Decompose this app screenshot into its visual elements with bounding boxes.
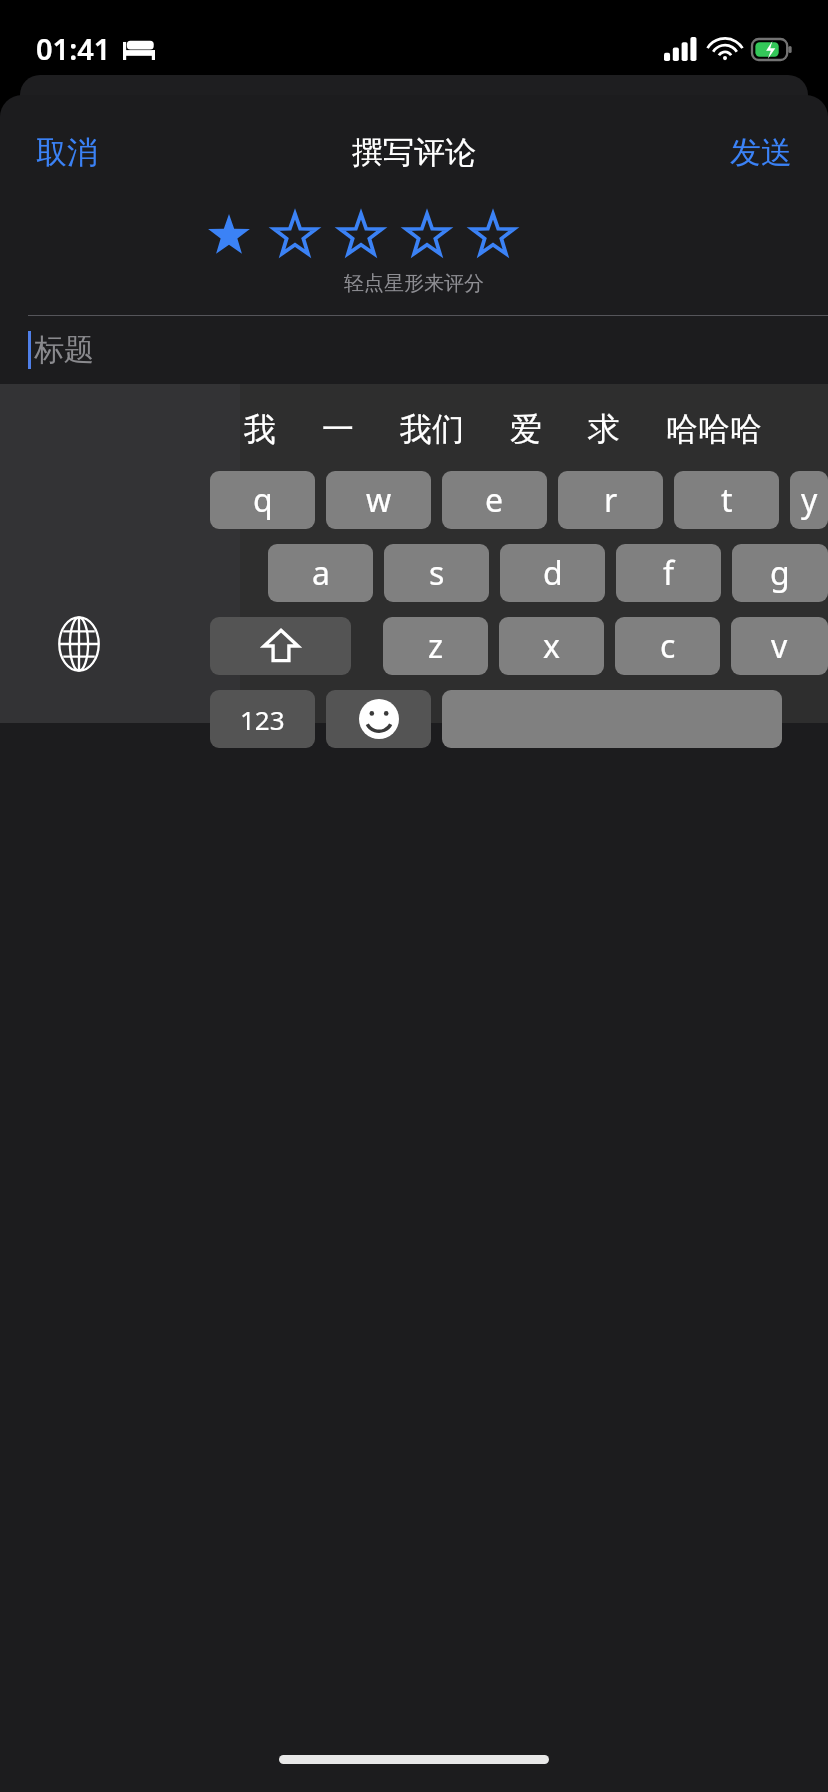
- button[interactable]: y: [790, 471, 828, 529]
- staticText: t: [721, 478, 733, 522]
- button[interactable]: 求: [566, 399, 642, 459]
- button[interactable]: 我们: [378, 399, 486, 459]
- button[interactable]: 我: [222, 399, 298, 459]
- button[interactable]: 123: [210, 690, 315, 748]
- staticText: s: [429, 551, 445, 595]
- button[interactable]: x: [499, 617, 604, 675]
- button[interactable]: c: [615, 617, 720, 675]
- staticText: w: [366, 478, 392, 522]
- staticText: 取消: [36, 133, 98, 172]
- staticText: e: [485, 478, 504, 522]
- button[interactable]: v: [731, 617, 828, 675]
- button[interactable]: d: [500, 544, 605, 602]
- button[interactable]: t: [674, 471, 779, 529]
- staticText: r: [604, 478, 618, 522]
- staticText: 一: [322, 409, 354, 449]
- button[interactable]: e: [442, 471, 547, 529]
- button[interactable]: a: [268, 544, 373, 602]
- button[interactable]: Rate 3 stars: [328, 205, 394, 265]
- button[interactable]: 哈哈哈: [644, 399, 784, 459]
- staticText: d: [543, 551, 563, 595]
- button[interactable]: g: [732, 544, 828, 602]
- staticText: v: [771, 624, 788, 668]
- button[interactable]: Rate 2 stars: [262, 205, 328, 265]
- button[interactable]: Switch keyboard language: [48, 613, 110, 675]
- staticText: 标题: [34, 331, 94, 369]
- staticText: 轻点星形来评分: [0, 271, 828, 296]
- staticText: c: [660, 624, 676, 668]
- button[interactable]: Rate 4 stars: [394, 205, 460, 265]
- staticText: f: [663, 551, 675, 595]
- button[interactable]: s: [384, 544, 489, 602]
- button[interactable]: 爱: [488, 399, 564, 459]
- button[interactable]: z: [383, 617, 488, 675]
- button[interactable]: 发送: [694, 119, 828, 186]
- staticText: g: [770, 551, 790, 595]
- staticText: 哈哈哈: [666, 409, 762, 449]
- staticText: y: [801, 478, 818, 522]
- button[interactable]: Rate 5 stars: [460, 205, 526, 265]
- staticText: 我: [244, 409, 276, 449]
- button[interactable]: 标题: [0, 316, 828, 384]
- button[interactable]: r: [558, 471, 663, 529]
- staticText: 爱: [510, 409, 542, 449]
- button[interactable]: q: [210, 471, 315, 529]
- button[interactable]: Space: [442, 690, 782, 748]
- button[interactable]: 取消: [0, 119, 134, 186]
- staticText: q: [253, 478, 273, 522]
- staticText: 求: [588, 409, 620, 449]
- button[interactable]: f: [616, 544, 721, 602]
- staticText: z: [428, 624, 444, 668]
- button[interactable]: w: [326, 471, 431, 529]
- staticText: 01:41: [36, 29, 111, 68]
- staticText: 我们: [400, 409, 464, 449]
- button[interactable]: Emoji: [326, 690, 431, 748]
- staticText: x: [543, 624, 560, 668]
- button[interactable]: 一: [300, 399, 376, 459]
- staticText: 123: [240, 702, 285, 737]
- staticText: 发送: [730, 133, 792, 172]
- button[interactable]: Rate 1 stars: [196, 205, 262, 265]
- staticText: a: [312, 551, 330, 595]
- button[interactable]: Shift: [210, 617, 351, 675]
- staticText: 撰写评论: [352, 133, 476, 172]
